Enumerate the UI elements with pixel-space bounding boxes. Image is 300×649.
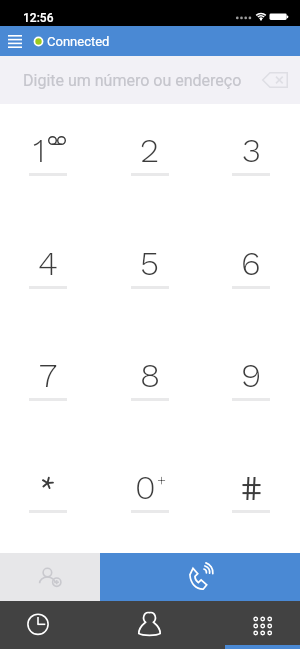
button[interactable]: 7: [0, 329, 100, 441]
button[interactable]: 0: [100, 441, 200, 553]
button[interactable]: 9: [200, 329, 300, 441]
button[interactable]: 8: [100, 329, 200, 441]
button[interactable]: Add contact: [0, 553, 100, 601]
button[interactable]: 1: [0, 104, 100, 217]
button[interactable]: Call: [100, 553, 300, 601]
button[interactable]: 5: [100, 217, 200, 329]
staticText: Connected: [47, 34, 110, 49]
button[interactable]: Backspace: [256, 61, 294, 99]
button[interactable]: 2: [100, 104, 200, 217]
staticText: 12:56: [23, 11, 54, 25]
button[interactable]: Recents: [0, 601, 94, 649]
staticText: Digite um número ou endereço: [23, 71, 242, 90]
staticText: 5: [140, 243, 160, 283]
staticText: 6: [241, 243, 261, 283]
button[interactable]: 4: [0, 217, 100, 329]
staticText: 7: [39, 355, 58, 395]
button[interactable]: [0, 441, 100, 553]
button[interactable]: 3: [200, 104, 300, 217]
staticText: 9: [241, 355, 262, 395]
button[interactable]: Contacts: [94, 601, 206, 649]
button[interactable]: Dialpad: [206, 601, 300, 649]
staticText: +: [157, 471, 167, 489]
staticText: 3: [242, 130, 261, 170]
button[interactable]: Menu: [0, 26, 30, 56]
button[interactable]: 6: [200, 217, 300, 329]
staticText: 8: [140, 355, 161, 395]
button[interactable]: [200, 441, 300, 553]
staticText: 2: [140, 130, 160, 170]
staticText: 0: [135, 467, 156, 507]
staticText: 4: [38, 243, 58, 283]
staticText: 1: [33, 130, 46, 170]
